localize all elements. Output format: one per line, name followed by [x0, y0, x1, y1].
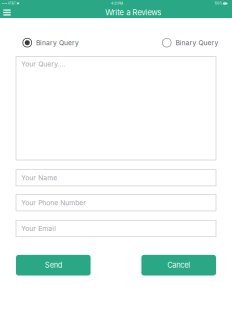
button[interactable]: Binary Query: [23, 36, 79, 50]
staticText: Your Phone Number: [21, 199, 86, 207]
staticText: Send: [45, 261, 62, 270]
staticText: 4:21 PM: [111, 2, 123, 5]
staticText: Binary Query: [175, 39, 218, 47]
button[interactable]: Binary Query: [162, 36, 218, 50]
button[interactable]: Menu: [0, 7, 14, 18]
staticText: Your Query....: [21, 60, 65, 68]
button[interactable]: Cancel: [141, 255, 216, 275]
staticText: Your Email: [21, 224, 56, 233]
staticText: Write a Reviews: [105, 8, 161, 17]
staticText: 100%: [214, 2, 222, 5]
staticText: Binary Query: [36, 39, 79, 47]
staticText: Your Name: [21, 174, 57, 182]
staticText: Cancel: [167, 261, 190, 270]
button[interactable]: Send: [16, 255, 91, 275]
staticText: AT&T: [8, 2, 16, 5]
